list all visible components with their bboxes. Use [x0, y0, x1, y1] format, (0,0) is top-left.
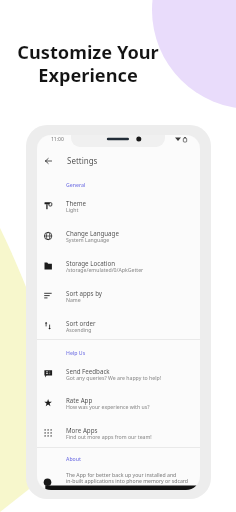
staticText: Find out more apps from our team!: [66, 433, 152, 440]
button[interactable]: Theme: [37, 193, 200, 223]
staticText: Light: [66, 206, 79, 213]
staticText: /storage/emulated/0/ApkGetter: [66, 266, 144, 273]
staticText: 11:00: [51, 136, 64, 143]
staticText: Got any queries? We are happy to help!: [66, 374, 162, 381]
button[interactable]: Rate App: [37, 390, 200, 420]
staticText: Ascending: [66, 326, 92, 333]
button[interactable]: Sort order: [37, 313, 200, 343]
staticText: Theme: [66, 199, 87, 207]
button[interactable]: Storage Location: [37, 253, 200, 283]
staticText: The App for better back up your installe…: [66, 471, 189, 485]
button[interactable]: Back: [41, 153, 56, 168]
staticText: Customize Your Experience: [0, 40, 176, 87]
button[interactable]: Change Language: [37, 223, 200, 253]
button[interactable]: Sort apps by: [37, 283, 200, 313]
staticText: Storage Location: [66, 259, 116, 267]
button[interactable]: Help Us: [66, 349, 86, 356]
staticText: Settings: [67, 155, 98, 166]
button[interactable]: Send Feedback: [37, 361, 200, 391]
staticText: More Apps: [66, 426, 98, 434]
staticText: Sort order: [66, 319, 96, 327]
button[interactable]: About: [66, 455, 82, 462]
button[interactable]: More Apps: [37, 420, 200, 450]
button[interactable]: General: [66, 181, 86, 188]
staticText: Send Feedback: [66, 367, 110, 375]
staticText: System Language: [66, 236, 110, 243]
staticText: Rate App: [66, 396, 93, 404]
staticText: How was your experience with us?: [66, 403, 150, 410]
staticText: Change Language: [66, 229, 119, 237]
staticText: Sort apps by: [66, 289, 103, 297]
staticText: Name: [66, 296, 81, 303]
